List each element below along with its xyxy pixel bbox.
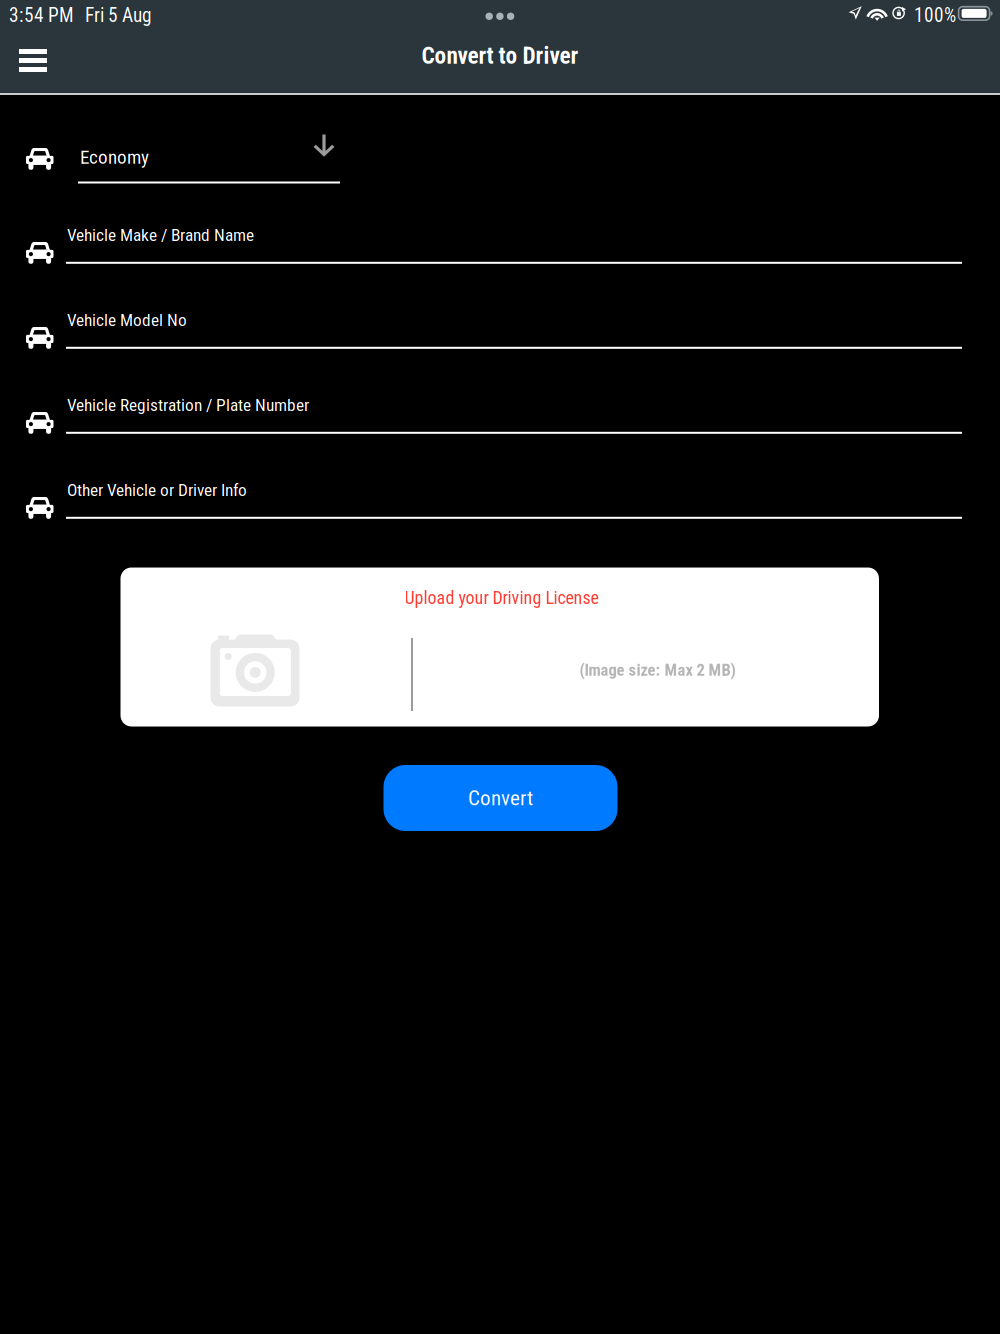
button[interactable]: Vehicle Registration / Plate Number [0, 382, 1000, 454]
staticText: Vehicle Registration / Plate Number [67, 395, 309, 415]
staticText: Other Vehicle or Driver Info [67, 480, 247, 500]
button[interactable]: Convert [383, 765, 617, 831]
staticText: Economy [80, 146, 149, 168]
staticText: 100% [914, 4, 956, 27]
staticText: Vehicle Model No [67, 310, 187, 330]
button[interactable]: Economy [0, 128, 1000, 200]
button[interactable]: Vehicle Make / Brand Name [0, 212, 1000, 284]
staticText: Upload your Driving License [404, 587, 598, 608]
staticText: Convert to Driver [421, 42, 578, 69]
staticText: 3:54 PM [9, 4, 74, 27]
button[interactable]: Other Vehicle or Driver Info [0, 467, 1000, 539]
staticText: (Image size: Max 2 MB) [579, 660, 735, 680]
button[interactable]: Menu [10, 38, 56, 84]
button[interactable]: Vehicle Model No [0, 297, 1000, 369]
button[interactable]: Upload your Driving License [120, 567, 879, 726]
staticText: Convert [468, 786, 533, 810]
staticText: Vehicle Make / Brand Name [67, 225, 254, 245]
staticText: Fri 5 Aug [85, 4, 152, 27]
